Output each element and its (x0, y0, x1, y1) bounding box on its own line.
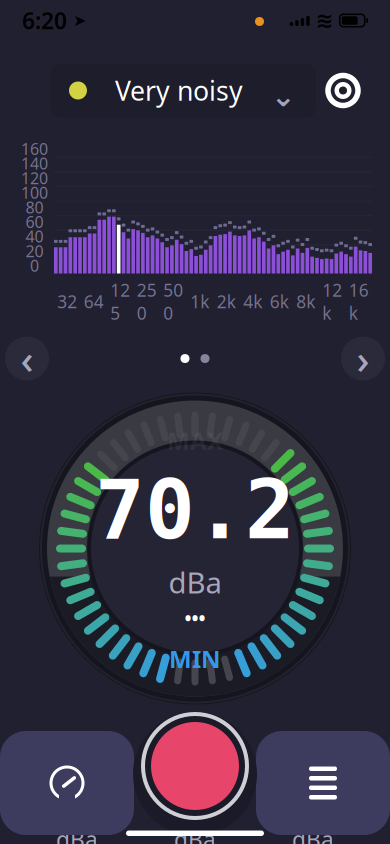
staticText: 140 (21, 153, 48, 174)
staticText: 0 (30, 255, 39, 276)
staticText: ➤ (67, 11, 86, 30)
staticText: 120 (21, 167, 48, 189)
staticText: dBa (174, 824, 216, 844)
staticText: › (356, 332, 369, 385)
staticText: 64.0 (141, 768, 249, 819)
staticText: 6k (270, 290, 289, 313)
staticText: 64 (84, 290, 104, 313)
button[interactable]: History (256, 731, 390, 835)
staticText: 160 (21, 138, 48, 159)
staticText: ⌄ (271, 79, 296, 113)
button[interactable]: Record (139, 710, 251, 822)
staticText: 4k (243, 290, 262, 313)
staticText: MAX (284, 726, 341, 762)
staticText: 12k (322, 278, 342, 324)
staticText: 8k (296, 290, 315, 313)
staticText: 6:20 (22, 5, 67, 35)
staticText: dBa (56, 824, 98, 844)
staticText: dBa (292, 824, 334, 844)
staticText: 250 (137, 278, 157, 324)
staticText: 33.9 (23, 768, 131, 819)
button[interactable]: Previous (5, 336, 49, 380)
button[interactable]: Meter (0, 731, 134, 835)
staticText: dBa (168, 563, 221, 602)
staticText: ‹ (20, 332, 33, 385)
staticText: 16k (349, 278, 369, 324)
staticText: AVG (169, 726, 220, 762)
staticText: 70.2 (95, 463, 295, 557)
staticText: 1k (190, 290, 209, 313)
staticText: 60 (25, 211, 43, 232)
staticText: 500 (163, 278, 183, 324)
button[interactable]: Settings (316, 63, 370, 117)
staticText: 2k (217, 290, 236, 313)
staticText: 82.7 (259, 768, 367, 819)
staticText: 100 (21, 182, 48, 203)
staticText: Very noisy (115, 73, 243, 108)
staticText: 32 (57, 290, 77, 313)
button[interactable]: Next (341, 336, 385, 380)
staticText: ••• (184, 605, 205, 630)
staticText: 20 (25, 240, 43, 262)
staticText: MIN (169, 643, 221, 675)
button[interactable]: Very noisy (51, 63, 316, 117)
staticText: 40 (25, 226, 43, 247)
staticText: ≋ (316, 8, 334, 33)
staticText: 80 (25, 197, 43, 218)
staticText: MIN (50, 726, 103, 762)
staticText: MAX (167, 424, 223, 456)
staticText: 125 (110, 278, 130, 324)
